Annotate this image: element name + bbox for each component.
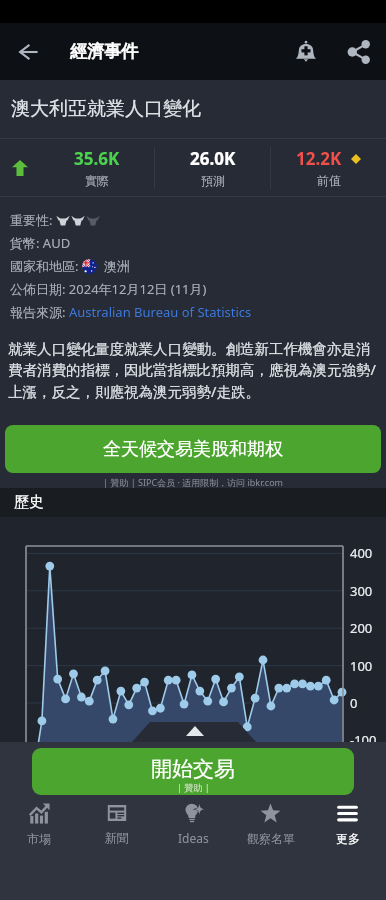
staticText: 經濟事件 [70,41,138,62]
staticText: 12.2K [296,147,342,170]
button[interactable]: 新聞 [78,796,155,852]
staticText: 26.0K [190,147,236,170]
staticText: 開始交易 [151,756,235,782]
staticText: 新聞 [105,830,129,845]
button[interactable]: 全天候交易美股和期权 [5,425,381,473]
button[interactable]: 觀察名單 [232,796,309,852]
staticText: 就業人口變化量度就業人口變動。創造新工作機會亦是消費者消費的指標，因此當指標比預… [8,340,376,402]
staticText: | 贊助 | SIPC会员 · 适用限制，访问 ibkr.com [103,476,284,488]
button[interactable]: 開始交易 [32,748,354,795]
staticText: 觀察名單 [247,831,295,846]
staticText: 實際 [85,173,109,188]
staticText: 重要性: [10,211,56,229]
button[interactable]: 市場 [0,796,78,852]
button[interactable]: Back [0,24,56,80]
button[interactable]: Ideas [155,796,232,852]
staticText: 公佈日期: 2024年12月12日 (11月) [10,280,207,298]
staticText: | 贊助 | [177,781,210,793]
staticText: 市場 [27,831,51,846]
staticText: 0 [350,694,358,712]
staticText: 歷史 [14,493,44,512]
staticText: Ideas [178,830,209,846]
staticText: 前值 [317,173,341,188]
staticText: 更多 [336,831,360,846]
button[interactable]: Australian Bureau of Statistics [69,303,252,321]
staticText: 澳洲 [104,258,130,274]
staticText: 報告來源: [10,303,69,321]
staticText: 全天候交易美股和期权 [103,438,283,461]
staticText: 預測 [201,173,225,188]
button[interactable]: 更多 [309,796,386,852]
staticText: 400 [350,544,373,562]
button[interactable]: Share [332,25,386,79]
staticText: 300 [350,582,373,600]
staticText: 200 [350,619,373,637]
staticText: 國家和地區: [10,257,82,275]
button[interactable]: Add alert [280,26,332,78]
staticText: 100 [350,657,373,675]
staticText: 澳大利亞就業人口變化 [11,97,201,121]
staticText: -100 [350,731,377,749]
staticText: 35.6K [74,147,120,170]
staticText: 貨幣: AUD [10,234,71,252]
